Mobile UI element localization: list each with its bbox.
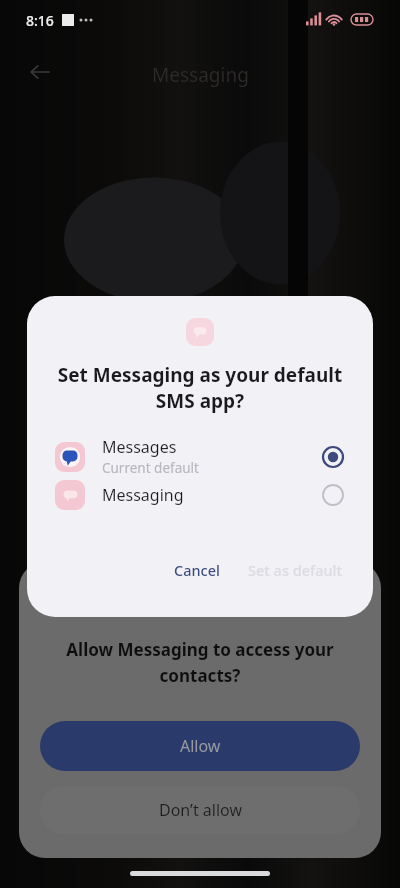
staticText: Set Messaging as your default SMS app? [45, 362, 355, 414]
button[interactable]: Set as default [234, 552, 357, 588]
staticText: Current default [102, 459, 199, 477]
staticText: Allow Messaging to access your contacts? [33, 638, 367, 687]
button[interactable]: Back [20, 52, 60, 92]
button[interactable]: Messages [27, 436, 373, 480]
staticText: Cancel [174, 560, 220, 580]
button[interactable]: Cancel [160, 552, 234, 588]
button[interactable]: Messaging [27, 480, 373, 542]
staticText: Allow [180, 735, 221, 757]
staticText: Don’t allow [159, 799, 242, 821]
button[interactable]: Don’t allow [40, 786, 360, 834]
button[interactable]: Allow [40, 721, 360, 771]
staticText: 8:16 [26, 11, 54, 30]
staticText: Messaging [102, 484, 321, 506]
staticText: Set as default [248, 560, 343, 580]
staticText: Messages [102, 436, 177, 458]
staticText: Messaging [152, 62, 249, 88]
